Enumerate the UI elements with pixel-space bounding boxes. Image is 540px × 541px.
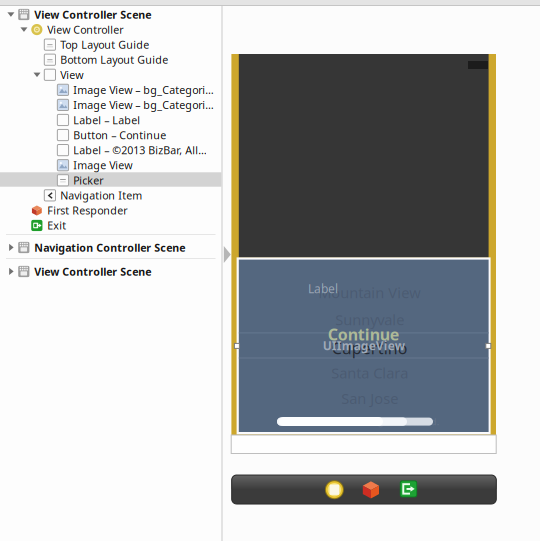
staticText: View Controller Scene: [34, 7, 151, 22]
staticText: Sunnyvale: [335, 310, 404, 329]
staticText: Mountain View: [318, 283, 421, 302]
staticText: Continue: [328, 324, 400, 345]
staticText: View Controller Scene: [34, 264, 151, 279]
staticText: Exit: [47, 218, 66, 233]
staticText: Image View – bg_Categori…: [73, 83, 213, 97]
staticText: Label: [308, 280, 338, 296]
staticText: First Responder: [47, 203, 127, 217]
staticText: Label – Label: [73, 113, 140, 127]
button[interactable]: View Controller: [325, 480, 344, 499]
staticText: Bottom Layout Guide: [60, 53, 168, 67]
staticText: Top Layout Guide: [60, 38, 149, 52]
staticText: Cupertino: [332, 337, 408, 359]
staticText: Santa Clara: [331, 363, 408, 382]
staticText: Label – ©2013 BizBar, All…: [73, 143, 206, 157]
button[interactable]: First Responder: [362, 481, 380, 499]
staticText: ©2013 BizBar. All rights reserved.: [300, 415, 440, 428]
staticText: Navigation Item: [60, 188, 142, 202]
staticText: UIImageView: [323, 338, 405, 353]
staticText: Image View – bg_Categori…: [73, 98, 213, 112]
staticText: San Jose: [341, 389, 398, 408]
staticText: Image View: [73, 158, 132, 172]
staticText: Navigation Controller Scene: [34, 240, 185, 255]
staticText: View: [60, 68, 83, 82]
staticText: Button – Continue: [73, 128, 166, 142]
button[interactable]: Exit: [400, 480, 417, 497]
staticText: View Controller: [47, 22, 123, 37]
staticText: Picker: [73, 173, 103, 187]
